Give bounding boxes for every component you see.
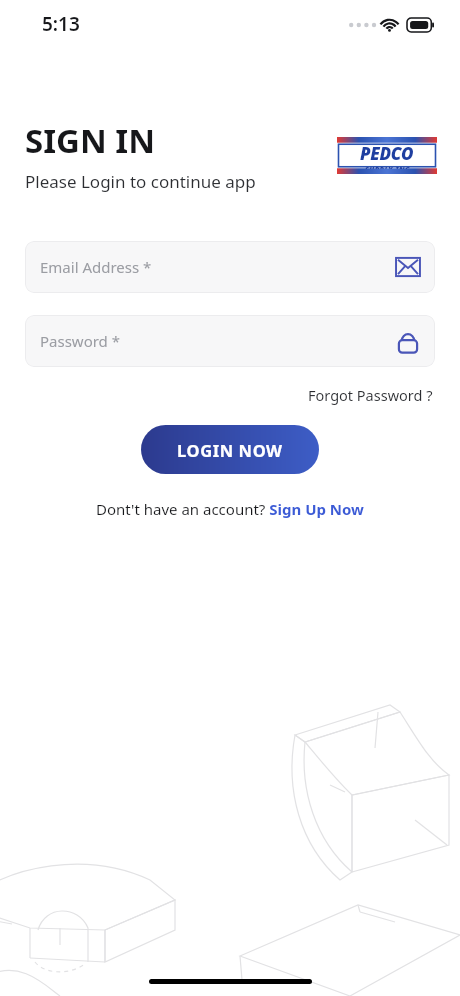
button[interactable]: Email Address * — [25, 241, 435, 293]
staticText: LOGIN NOW — [177, 439, 283, 461]
staticText: 5:13 — [42, 11, 80, 37]
staticText: Password * — [40, 331, 121, 351]
staticText: Forgot Password ? — [308, 385, 433, 405]
staticText: Please Login to continue app — [25, 170, 256, 193]
staticText: PEDCO — [360, 142, 414, 165]
other: Email Address * — [395, 254, 421, 280]
staticText: SUPPLY INC — [365, 165, 410, 169]
staticText: SIGN IN — [25, 118, 155, 163]
other: Password * — [395, 328, 421, 354]
button[interactable]: PEDCO Supply Inc logo — [337, 137, 437, 174]
button[interactable]: LOGIN NOW — [141, 425, 319, 474]
button[interactable]: Password * — [25, 315, 435, 367]
button[interactable]: Dont't have an account? Sign Up Now — [92, 495, 368, 523]
button[interactable]: Forgot Password ? — [306, 381, 435, 409]
staticText: Dont't have an account? Sign Up Now — [96, 499, 364, 519]
staticText: Email Address * — [40, 257, 152, 277]
